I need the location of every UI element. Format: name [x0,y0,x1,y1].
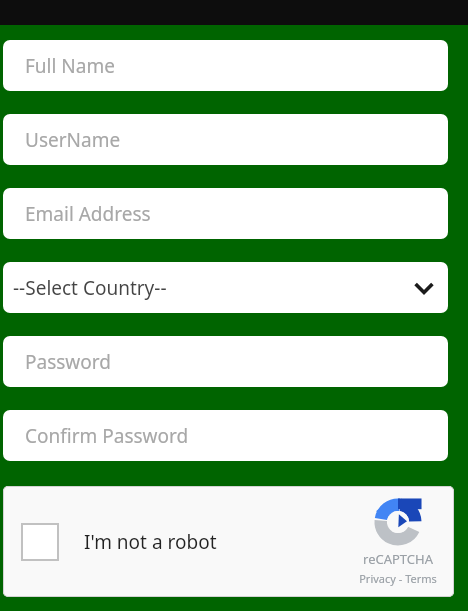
staticText: Full Name [25,53,115,79]
staticText: --Select Country-- [13,275,167,301]
staticText: reCAPTCHA [363,550,433,568]
button[interactable]: Email Address [3,188,448,239]
button[interactable]: --Select Country-- [3,262,448,313]
button[interactable]: UserName [3,114,448,165]
staticText: UserName [25,127,121,153]
staticText: Password [25,349,111,375]
button[interactable]: Full Name [3,40,448,91]
staticText: Privacy - Terms [359,571,437,586]
button[interactable]: I'm not a robot checkbox [21,523,217,561]
button[interactable]: Confirm Password [3,410,448,461]
staticText: Confirm Password [25,423,189,449]
staticText: Email Address [25,201,151,227]
button[interactable]: Password [3,336,448,387]
staticText: I'm not a robot [84,529,217,555]
other: I'm not a robot checkbox [21,523,59,561]
